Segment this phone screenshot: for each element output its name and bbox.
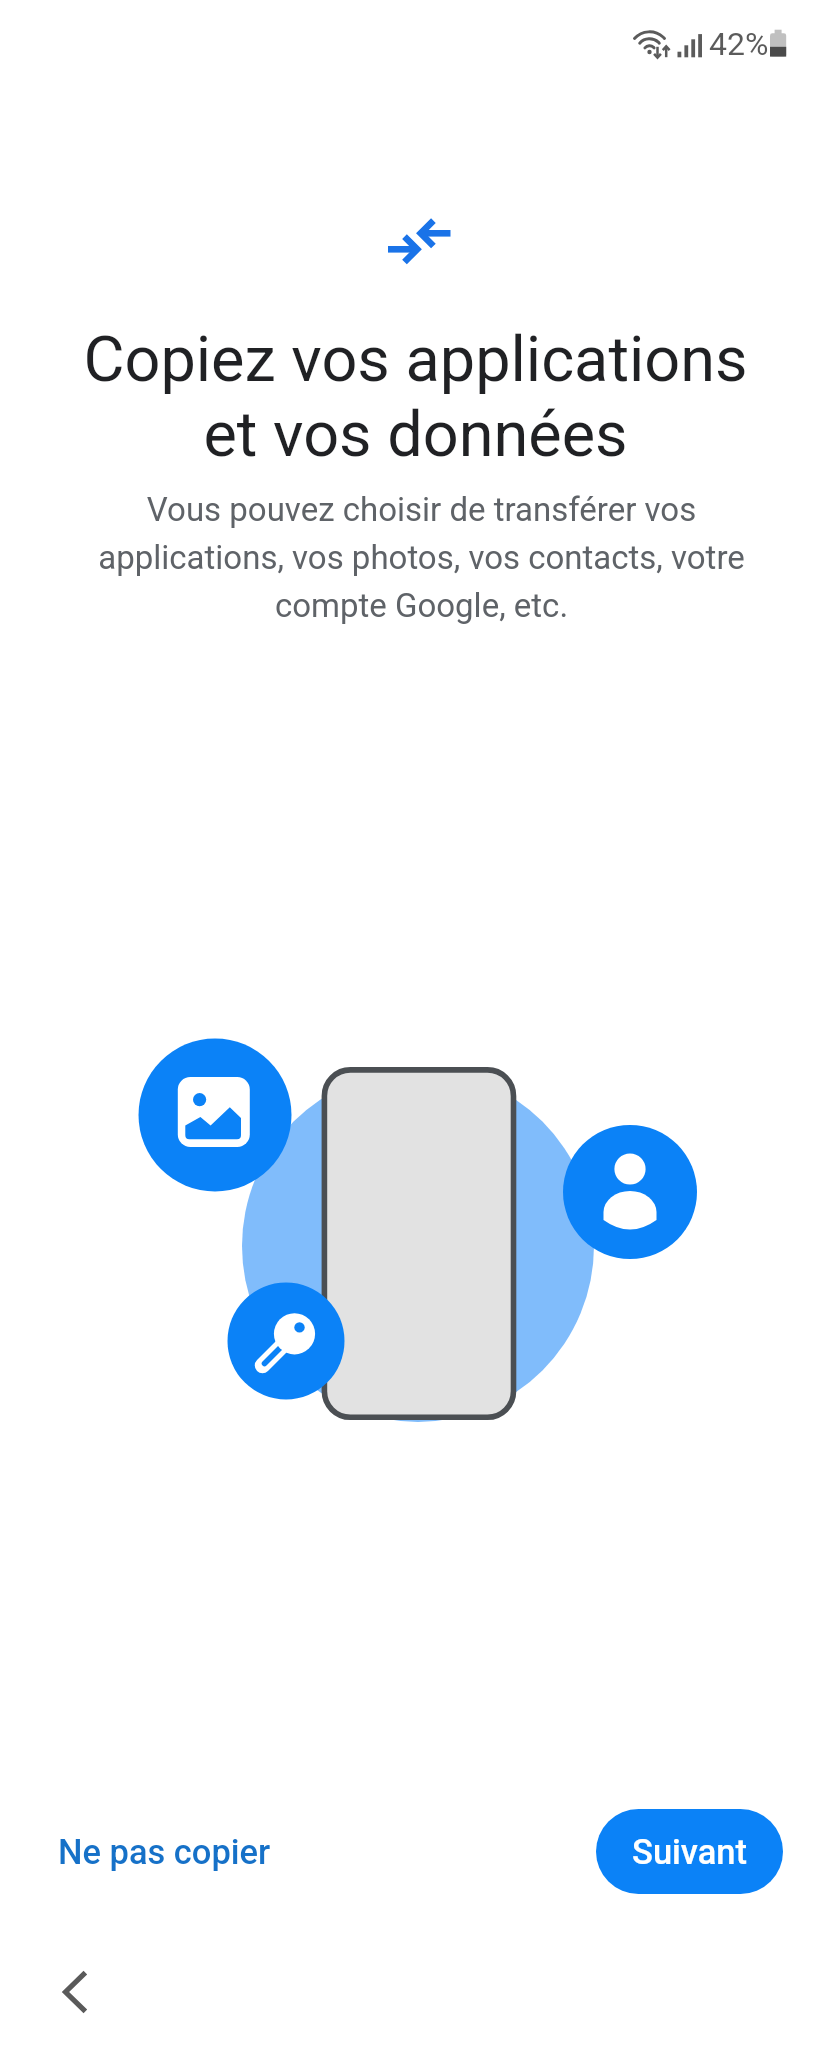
button[interactable]: Ne pas copier	[38, 1810, 291, 1894]
button[interactable]: Suivant	[596, 1809, 783, 1894]
button[interactable]: Back	[38, 1956, 110, 2028]
staticText: Vous pouvez choisir de transférer vos ap…	[98, 490, 745, 625]
staticText: 42%	[709, 25, 769, 63]
staticText: Copiez vos applications et vos données	[83, 323, 748, 471]
staticText: Ne pas copier	[58, 1832, 271, 1872]
staticText: Suivant	[632, 1832, 748, 1872]
